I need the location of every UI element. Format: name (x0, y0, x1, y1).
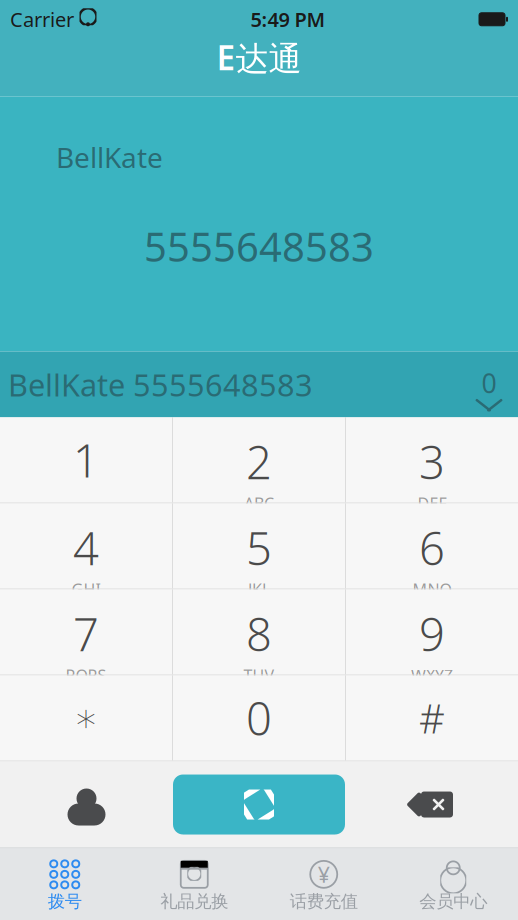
button[interactable]: # (346, 675, 518, 760)
staticText: MNO (412, 579, 451, 600)
staticText: 5 (246, 517, 272, 578)
staticText: 话费充值 (290, 891, 358, 912)
button[interactable]: 8 (173, 589, 345, 674)
staticText: 2 (246, 431, 272, 492)
staticText: 4 (73, 517, 99, 578)
staticText: 0 (481, 365, 496, 401)
staticText: BellKate (56, 138, 163, 176)
button[interactable]: Contacts (0, 761, 173, 847)
button[interactable]: 9 (346, 589, 518, 674)
staticText: 拨号 (48, 891, 82, 912)
button[interactable]: 3 (346, 417, 518, 502)
staticText (73, 4, 79, 34)
button[interactable]: 0 (173, 675, 345, 760)
staticText: 会员中心 (419, 891, 487, 912)
button[interactable]: 礼品兑换 (129, 848, 259, 920)
staticText: 6 (419, 517, 445, 578)
staticText: JKL (248, 579, 270, 600)
staticText: 0 (246, 688, 272, 748)
staticText: GHI (71, 579, 100, 600)
button[interactable]: 5 (173, 503, 345, 588)
staticText: PQRS (65, 665, 106, 686)
button[interactable]: 7 (0, 589, 172, 674)
button[interactable]: 拨号 (0, 848, 129, 920)
staticText: 3 (419, 431, 445, 492)
staticText: 5:49 PM (250, 6, 325, 33)
staticText: 9 (419, 603, 445, 664)
button[interactable]: 6 (346, 503, 518, 588)
button[interactable]: Delete (345, 761, 518, 847)
staticText: ∗ (73, 695, 98, 741)
button[interactable]: ∗ (0, 675, 172, 760)
staticText: 5555648583 (144, 220, 374, 273)
staticText: Carrier (10, 6, 74, 33)
staticText: WXYZ (411, 665, 453, 686)
staticText: 1 (73, 430, 99, 490)
button[interactable]: 1 (0, 417, 172, 502)
button[interactable]: 4 (0, 503, 172, 588)
staticText: TUV (243, 665, 274, 686)
staticText: 礼品兑换 (160, 891, 228, 912)
staticText: # (419, 691, 445, 744)
button[interactable]: 2 (173, 417, 345, 502)
button[interactable]: Call (173, 774, 345, 834)
staticText: ¥ (318, 860, 330, 888)
staticText: ABC (244, 493, 274, 514)
button[interactable]: ¥ (259, 848, 388, 920)
staticText: E达通 (216, 35, 301, 80)
button[interactable]: 会员中心 (388, 848, 518, 920)
button[interactable]: BellKate 5555648583 (0, 351, 518, 417)
staticText: BellKate 5555648583 (8, 364, 313, 405)
staticText: DEF (417, 493, 446, 514)
staticText: 8 (246, 603, 272, 664)
staticText: 7 (73, 603, 99, 664)
